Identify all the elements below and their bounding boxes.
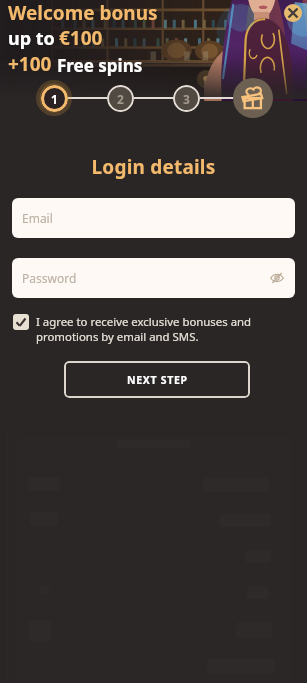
button[interactable]: NEXT STEP [64, 361, 250, 398]
staticText: Welcome bonus [8, 0, 158, 26]
staticText: NEXT STEP [127, 373, 188, 387]
button[interactable]: Close [284, 4, 302, 22]
staticText: €100 [59, 25, 103, 51]
button[interactable]: Show password [270, 271, 284, 285]
staticText: Free spins [57, 54, 143, 77]
staticText: 2 [117, 91, 124, 107]
button[interactable]: I agree to receive exclusive bonuses and… [13, 314, 285, 344]
staticText: +100 [8, 51, 57, 77]
staticText: 1 [51, 91, 58, 107]
button[interactable]: Email [12, 198, 295, 238]
staticText: Password [22, 270, 77, 286]
staticText: up to [8, 26, 55, 51]
staticText: Login details [0, 154, 307, 180]
button[interactable]: 3 [173, 85, 200, 112]
button[interactable]: 1 [41, 85, 68, 112]
staticText: I agree to receive exclusive bonuses and… [36, 314, 285, 344]
staticText: 3 [183, 91, 190, 107]
staticText: Email [22, 210, 53, 226]
button[interactable]: Password [12, 258, 295, 298]
button[interactable]: Bonus gift [233, 78, 273, 118]
button[interactable]: 2 [107, 85, 134, 112]
